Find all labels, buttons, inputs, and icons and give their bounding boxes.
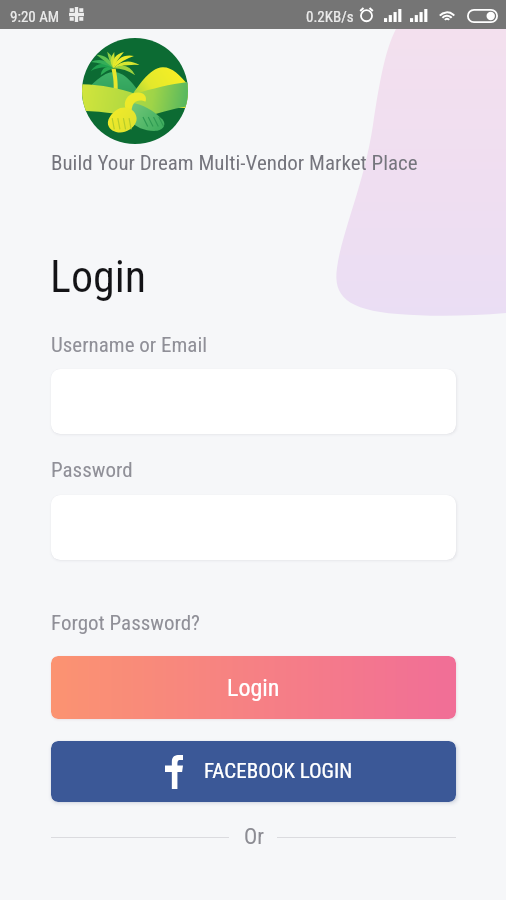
- button[interactable]: Login: [51, 656, 456, 719]
- staticText: Login: [50, 251, 147, 303]
- staticText: Password: [51, 458, 133, 483]
- other: App logo: [82, 38, 188, 144]
- staticText: Username or Email: [51, 333, 208, 358]
- staticText: Forgot Password?: [51, 611, 200, 636]
- staticText: FACEBOOK LOGIN: [204, 759, 353, 784]
- staticText: Login: [227, 674, 280, 702]
- staticText: 0.2KB/s: [306, 8, 354, 26]
- staticText: Or: [244, 824, 264, 850]
- other: Facebook: [165, 755, 183, 789]
- button[interactable]: Facebook: [51, 741, 456, 802]
- button[interactable]: Forgot Password?: [51, 611, 200, 636]
- staticText: Build Your Dream Multi-Vendor Market Pla…: [51, 151, 418, 176]
- staticText: 9:20 AM: [10, 8, 60, 26]
- other: Status icon: [68, 6, 85, 23]
